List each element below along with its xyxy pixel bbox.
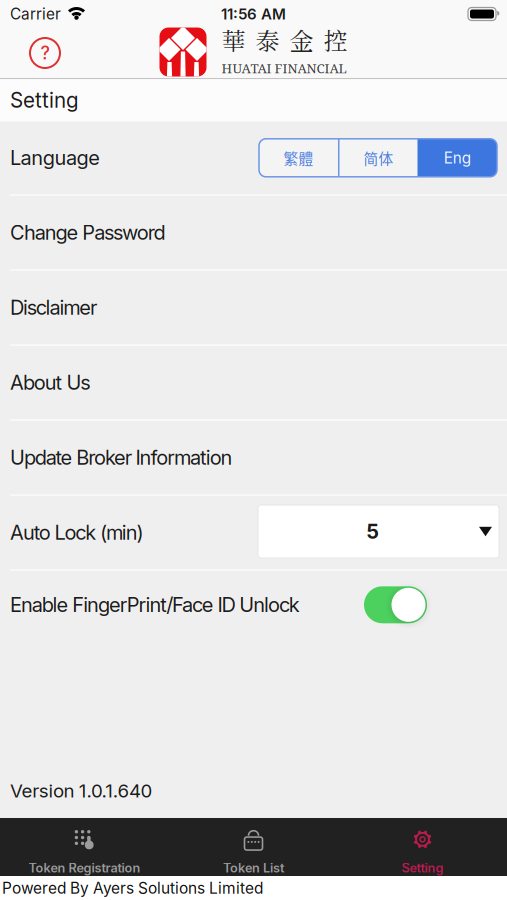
button[interactable]: Setting bbox=[338, 818, 507, 876]
staticText: 繁體 bbox=[283, 147, 313, 168]
button[interactable]: Change Password bbox=[0, 196, 507, 269]
staticText: Powered By Ayers Solutions Limited bbox=[2, 879, 263, 897]
staticText: 11:56 AM bbox=[221, 5, 286, 23]
staticText: Disclaimer bbox=[10, 295, 97, 320]
staticText: Token Registration bbox=[28, 860, 140, 876]
button[interactable]: Token List bbox=[169, 818, 338, 876]
staticText: Eng bbox=[444, 148, 471, 167]
button[interactable]: 简体 bbox=[339, 139, 417, 177]
staticText: Auto Lock (min) bbox=[10, 520, 144, 545]
button[interactable]: Auto lock minutes bbox=[258, 506, 499, 559]
staticText: Enable FingerPrint/Face ID Unlock bbox=[10, 593, 300, 617]
button[interactable]: About Us bbox=[0, 346, 507, 419]
button[interactable]: Disclaimer bbox=[0, 271, 507, 344]
staticText: Update Broker Information bbox=[10, 445, 233, 470]
staticText: Setting bbox=[401, 860, 443, 876]
button[interactable]: Enable FingerPrint/Face ID Unlock bbox=[364, 586, 427, 623]
staticText: Version 1.0.1.640 bbox=[10, 779, 153, 802]
staticText: HUATAI FINANCIAL bbox=[221, 59, 346, 77]
staticText: ? bbox=[40, 42, 49, 64]
staticText: Language bbox=[10, 146, 100, 170]
button[interactable]: Help bbox=[30, 38, 60, 68]
staticText: About Us bbox=[10, 370, 90, 395]
staticText: Setting bbox=[10, 88, 79, 113]
button[interactable]: 繁體 bbox=[259, 139, 338, 177]
staticText: Carrier bbox=[10, 5, 61, 23]
staticText: 5 bbox=[366, 519, 378, 544]
staticText: Token List bbox=[223, 860, 284, 876]
staticText: Change Password bbox=[10, 220, 166, 245]
staticText: 華泰金控 bbox=[221, 22, 347, 57]
button[interactable]: Update Broker Information bbox=[0, 421, 507, 494]
button[interactable]: Token Registration bbox=[0, 818, 169, 876]
button[interactable]: Eng bbox=[417, 139, 497, 177]
staticText: 简体 bbox=[363, 147, 393, 168]
